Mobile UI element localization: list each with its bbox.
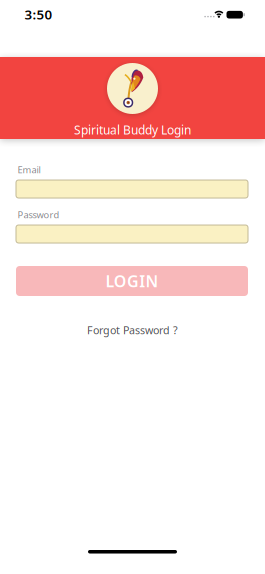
staticText: LOGIN xyxy=(106,270,158,292)
staticText: Forgot Password ? xyxy=(87,323,178,337)
staticText: Password xyxy=(17,208,59,221)
staticText: Email xyxy=(17,163,40,176)
button[interactable]: Email xyxy=(16,180,248,198)
button[interactable]: Forgot Password ? xyxy=(87,323,178,337)
staticText: 3:50 xyxy=(24,5,52,23)
button[interactable]: LOGIN xyxy=(16,266,248,296)
button[interactable]: Password xyxy=(16,225,248,243)
staticText: Spiritual Buddy Login xyxy=(74,122,191,138)
